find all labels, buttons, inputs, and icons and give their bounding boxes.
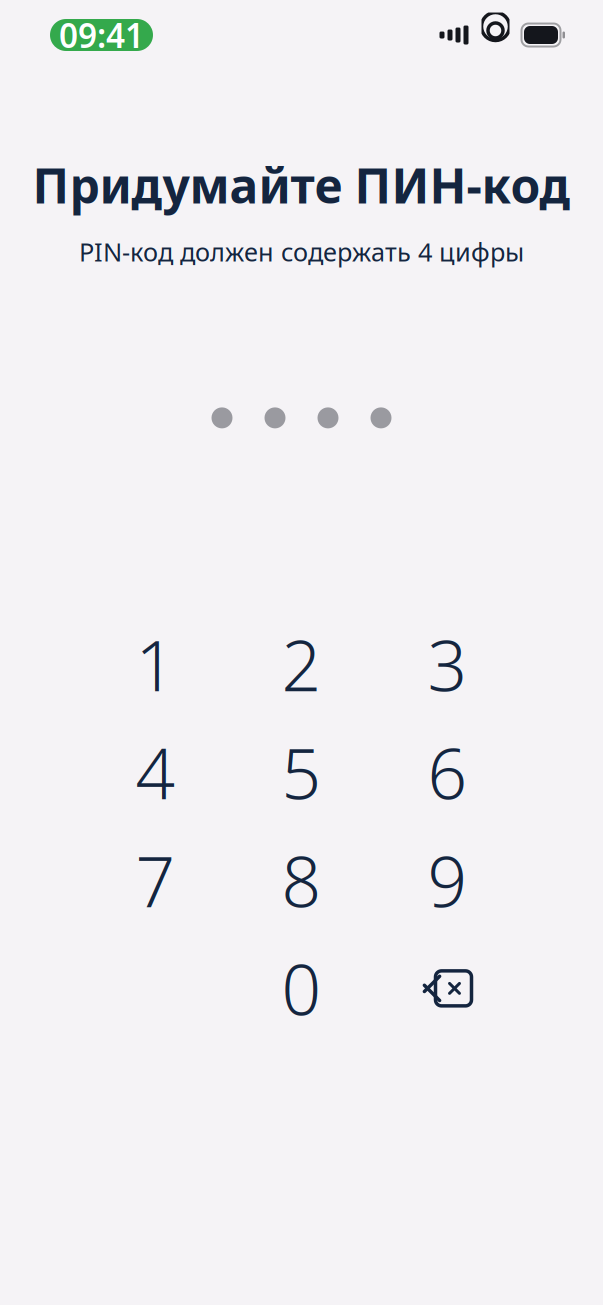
staticText: 4 (135, 726, 175, 818)
button[interactable]: 1 (82, 610, 228, 718)
staticText: 8 (281, 834, 321, 926)
button[interactable]: 7 (82, 826, 228, 934)
button[interactable]: 5 (228, 718, 374, 826)
button[interactable]: 3 (374, 610, 520, 718)
button[interactable]: Delete (374, 934, 520, 1042)
staticText: 3 (427, 618, 467, 710)
button[interactable]: 9 (374, 826, 520, 934)
staticText: 7 (135, 834, 175, 926)
button[interactable]: 4 (82, 718, 228, 826)
staticText: 1 (135, 618, 175, 710)
staticText: 09:41 (59, 13, 144, 57)
staticText: Придумайте ПИН-код (32, 153, 570, 217)
staticText: PIN-код должен содержать 4 цифры (79, 235, 524, 268)
button[interactable]: 8 (228, 826, 374, 934)
staticText: 0 (281, 942, 321, 1034)
button[interactable]: 0 (228, 934, 374, 1042)
button[interactable]: 2 (228, 610, 374, 718)
staticText: 6 (427, 726, 467, 818)
staticText: 5 (281, 726, 321, 818)
staticText: 2 (281, 618, 321, 710)
button[interactable]: 6 (374, 718, 520, 826)
staticText: 9 (427, 834, 467, 926)
